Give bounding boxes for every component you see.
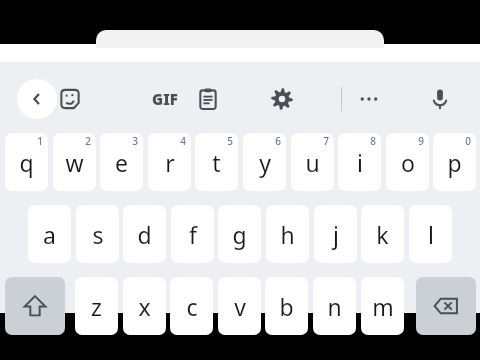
staticText: 9 xyxy=(418,134,424,148)
staticText: s xyxy=(92,219,104,250)
staticText: b xyxy=(279,291,294,322)
button[interactable]: u xyxy=(291,133,334,191)
button[interactable]: v xyxy=(218,277,261,335)
staticText: n xyxy=(327,291,342,322)
button[interactable]: h xyxy=(266,205,309,263)
button[interactable]: Voice input xyxy=(420,79,460,119)
staticText: q xyxy=(19,147,34,178)
button[interactable]: l xyxy=(409,205,452,263)
staticText: g xyxy=(232,219,247,250)
button[interactable]: e xyxy=(100,133,143,191)
button[interactable]: GIF xyxy=(140,79,190,119)
staticText: 1 xyxy=(37,134,43,148)
staticText: w xyxy=(65,147,84,178)
button[interactable]: f xyxy=(171,205,214,263)
button[interactable]: c xyxy=(170,277,213,335)
staticText: 2 xyxy=(85,134,91,148)
staticText: 3 xyxy=(132,134,138,148)
button[interactable]: j xyxy=(314,205,357,263)
button[interactable]: Shift xyxy=(5,277,65,335)
button[interactable]: Settings xyxy=(262,79,302,119)
button[interactable]: Clipboard xyxy=(188,79,228,119)
staticText: j xyxy=(333,219,339,250)
staticText: k xyxy=(376,219,389,250)
button[interactable]: x xyxy=(123,277,166,335)
staticText: 4 xyxy=(180,134,186,148)
button[interactable]: g xyxy=(218,205,261,263)
staticText: f xyxy=(189,219,197,250)
button[interactable]: p xyxy=(433,133,476,191)
button[interactable]: i xyxy=(338,133,381,191)
button[interactable]: s xyxy=(76,205,119,263)
staticText: 0 xyxy=(465,134,471,148)
staticText: e xyxy=(115,147,128,178)
staticText: r xyxy=(165,147,175,178)
staticText: 6 xyxy=(275,134,281,148)
button[interactable]: o xyxy=(386,133,429,191)
staticText: y xyxy=(259,147,271,178)
staticText: l xyxy=(428,219,434,250)
staticText: c xyxy=(186,291,198,322)
staticText: h xyxy=(280,219,295,250)
button[interactable]: n xyxy=(313,277,356,335)
button[interactable]: y xyxy=(243,133,286,191)
staticText: 8 xyxy=(370,134,376,148)
button[interactable]: b xyxy=(265,277,308,335)
button[interactable]: More options xyxy=(349,79,389,119)
button[interactable]: t xyxy=(195,133,238,191)
button[interactable]: w xyxy=(53,133,96,191)
staticText: i xyxy=(357,147,363,178)
staticText: GIF xyxy=(152,89,178,109)
staticText: x xyxy=(138,291,151,322)
button[interactable]: d xyxy=(123,205,166,263)
button[interactable]: r xyxy=(148,133,191,191)
button[interactable]: k xyxy=(361,205,404,263)
staticText: m xyxy=(372,291,394,322)
staticText: 5 xyxy=(227,134,233,148)
button[interactable]: z xyxy=(75,277,118,335)
button[interactable]: m xyxy=(361,277,404,335)
staticText: d xyxy=(137,219,152,250)
staticText: t xyxy=(212,147,221,178)
button[interactable]: Backspace xyxy=(416,277,476,335)
staticText: 7 xyxy=(323,134,329,148)
staticText: o xyxy=(401,147,415,178)
button[interactable]: Stickers xyxy=(50,79,90,119)
button[interactable]: a xyxy=(28,205,71,263)
staticText: p xyxy=(447,147,462,178)
staticText: a xyxy=(43,219,56,250)
button[interactable]: Back xyxy=(17,79,57,119)
button[interactable]: q xyxy=(5,133,48,191)
staticText: v xyxy=(234,291,246,322)
staticText: u xyxy=(305,147,320,178)
staticText: z xyxy=(91,291,102,322)
